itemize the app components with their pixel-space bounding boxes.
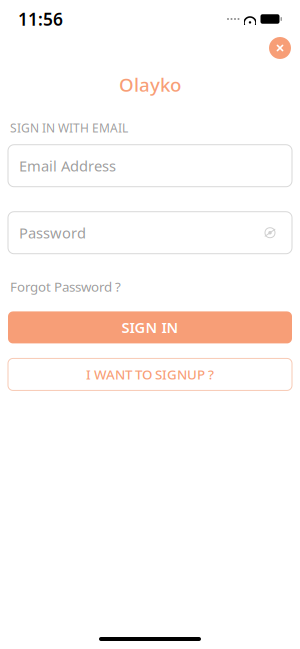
button[interactable]: SIGN IN bbox=[8, 311, 292, 343]
staticText: SIGN IN bbox=[121, 318, 178, 337]
staticText: Olayko bbox=[119, 72, 181, 97]
button[interactable]: I WANT TO SIGNUP ? bbox=[8, 358, 292, 390]
staticText: Email Address bbox=[19, 156, 116, 175]
staticText: Forgot Password ? bbox=[10, 278, 121, 295]
button[interactable]: Forgot Password ? bbox=[10, 278, 121, 295]
staticText: I WANT TO SIGNUP ? bbox=[86, 366, 214, 383]
button[interactable]: Show password bbox=[259, 222, 281, 244]
staticText: 11:56 bbox=[18, 7, 63, 30]
button[interactable]: Close bbox=[266, 34, 294, 62]
staticText: Password bbox=[19, 223, 86, 242]
staticText: SIGN IN WITH EMAIL bbox=[10, 120, 128, 136]
